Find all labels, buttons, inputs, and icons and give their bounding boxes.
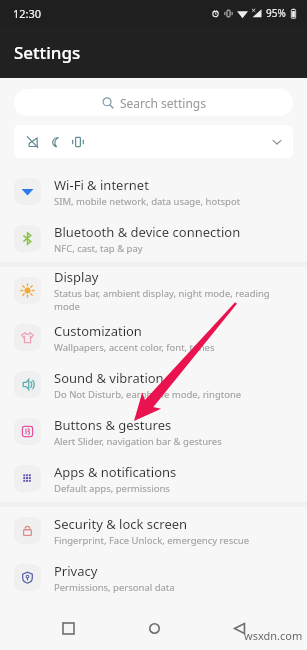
staticText: Buttons & gestures	[54, 416, 172, 434]
staticText: wsxdn.com	[244, 628, 303, 643]
button[interactable]: Airplane mode	[14, 125, 293, 158]
staticText: Wallpapers, accent color, font, tones	[54, 341, 215, 354]
staticText: Customization	[54, 322, 142, 340]
staticText: Default apps, permissions	[54, 482, 170, 495]
staticText: SIM, mobile network, data usage, hotspot	[54, 195, 241, 208]
staticText: Wi-Fi & internet	[54, 176, 149, 194]
button[interactable]: Search settings	[14, 89, 293, 116]
button[interactable]: Display	[0, 267, 307, 314]
button[interactable]: Buttons & gestures	[0, 408, 307, 455]
button[interactable]: Recent apps	[51, 611, 85, 645]
staticText: Bluetooth & device connection	[54, 223, 241, 241]
staticText: NFC, cast, tap & pay	[54, 242, 143, 255]
button[interactable]: Back	[222, 611, 256, 645]
other: Vibrate	[71, 135, 85, 149]
staticText: 95%	[266, 6, 286, 20]
button[interactable]: Security & lock screen	[0, 507, 307, 554]
staticText: Display	[54, 268, 99, 286]
button[interactable]: Bluetooth & device connection	[0, 215, 307, 262]
staticText: Apps & notifications	[54, 463, 177, 481]
button[interactable]: Customization	[0, 314, 307, 361]
staticText: Sound & vibration	[54, 369, 164, 387]
button[interactable]: Sound & vibration	[0, 361, 307, 408]
staticText: Do Not Disturb, earphone mode, ringtone	[54, 388, 242, 401]
staticText: Settings	[14, 41, 81, 64]
button[interactable]: Apps & notifications	[0, 455, 307, 502]
staticText: Status bar, ambient display, night mode,…	[54, 287, 293, 313]
staticText: Permissions, personal data	[54, 581, 175, 594]
staticText: Fingerprint, Face Unlock, emergency resc…	[54, 534, 250, 547]
other: Airplane mode	[25, 135, 39, 149]
button[interactable]: Home	[137, 611, 171, 645]
button[interactable]: Expand	[269, 134, 285, 150]
staticText: Privacy	[54, 562, 98, 580]
staticText: Alert Slider, navigation bar & gestures	[54, 435, 222, 448]
staticText: Security & lock screen	[54, 515, 188, 533]
button[interactable]: Wi-Fi & internet	[0, 168, 307, 215]
button[interactable]: Privacy	[0, 554, 307, 601]
staticText: Search settings	[120, 95, 206, 111]
staticText: 12:30	[13, 6, 42, 21]
other: Do not disturb	[48, 135, 62, 149]
